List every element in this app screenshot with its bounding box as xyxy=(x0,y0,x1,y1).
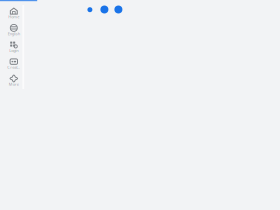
staticText: Home xyxy=(8,14,19,19)
button[interactable]: More xyxy=(3,74,24,86)
staticText: Creat... xyxy=(7,65,20,70)
button[interactable]: Creat... xyxy=(3,58,24,69)
button[interactable]: English xyxy=(3,24,24,35)
staticText: English xyxy=(8,31,20,36)
button[interactable]: Home xyxy=(3,7,24,18)
staticText: More xyxy=(9,81,19,87)
staticText: Login xyxy=(9,48,18,53)
button[interactable]: Login xyxy=(3,41,24,52)
